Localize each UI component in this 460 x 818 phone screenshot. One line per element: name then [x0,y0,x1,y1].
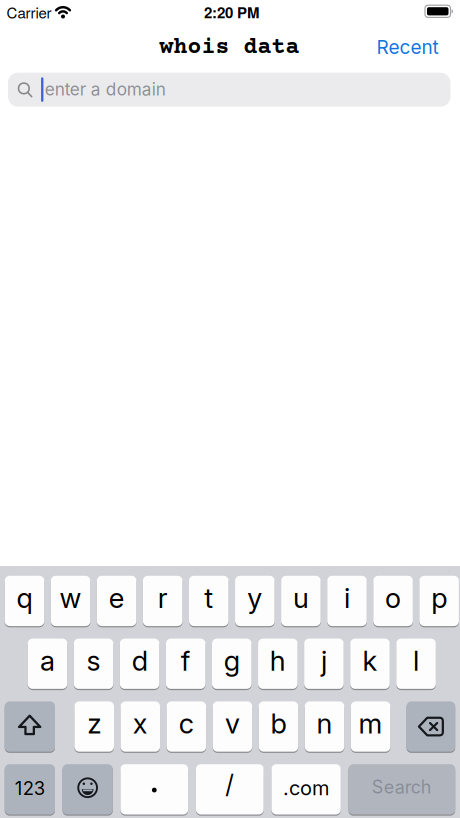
staticText: a [40,644,55,677]
button[interactable]: i [327,576,367,626]
staticText: k [362,644,377,677]
staticText: h [270,644,286,677]
button[interactable]: enter a domain [8,73,450,107]
staticText: m [359,707,383,740]
button[interactable]: k [350,639,390,689]
staticText: y [247,581,262,615]
staticText: b [270,707,286,740]
staticText: f [181,644,191,677]
staticText: j [321,644,327,677]
button[interactable]: m [351,701,390,752]
staticText: e [109,581,125,615]
staticText: whois data [159,35,299,61]
button[interactable]: v [213,701,252,752]
staticText: p [431,581,447,615]
staticText: x [133,707,148,740]
staticText: c [179,707,194,740]
button[interactable]: l [396,639,436,689]
button[interactable]: z [74,701,114,752]
staticText: 123 [15,777,45,799]
button[interactable]: Recent [376,36,438,59]
staticText: enter a domain [45,79,166,100]
staticText: .com [283,776,329,800]
staticText: Search [372,776,432,798]
staticText: t [204,581,213,615]
button[interactable]: g [212,639,252,689]
staticText: n [317,707,333,740]
button[interactable]: y [235,576,275,626]
button[interactable]: d [120,639,159,689]
button[interactable]: f [166,639,205,689]
staticText: w [60,581,82,615]
button[interactable]: x [120,701,160,752]
button[interactable]: e [97,576,136,626]
staticText: g [224,644,240,677]
staticText: r [158,581,168,615]
button[interactable]: c [166,701,206,752]
button[interactable]: h [258,639,298,689]
staticText: Recent [376,36,438,59]
button[interactable]: Delete [406,701,455,752]
staticText: v [225,707,240,740]
button[interactable]: n [305,701,344,752]
button[interactable]: s [74,639,113,689]
button[interactable]: o [373,576,413,626]
staticText: l [413,644,419,677]
button[interactable]: 123 [5,764,55,814]
button[interactable]: j [304,639,344,689]
staticText: i [344,581,350,615]
button[interactable] [120,764,188,814]
staticText: z [87,707,101,740]
staticText: q [16,581,32,615]
button[interactable]: p [419,576,459,626]
staticText: 2:20 PM [204,1,259,23]
button[interactable]: a [28,639,67,689]
button[interactable]: / [196,764,264,814]
button[interactable]: .com [271,764,341,814]
button[interactable]: Search [348,764,455,814]
button[interactable]: q [5,576,44,626]
button[interactable]: r [143,576,182,626]
button[interactable]: u [281,576,321,626]
button[interactable]: b [259,701,298,752]
staticText: d [132,644,148,677]
button[interactable]: w [51,576,90,626]
button[interactable]: t [189,576,229,626]
staticText: / [225,769,234,799]
staticText: Carrier [6,1,51,23]
staticText: s [87,644,101,677]
staticText: o [385,581,401,615]
staticText: u [293,581,309,615]
button[interactable]: Emoji [62,764,113,814]
button[interactable]: Shift [5,701,55,752]
